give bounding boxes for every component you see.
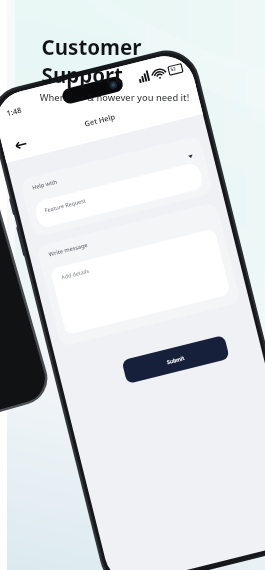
button[interactable]: Back xyxy=(30,189,48,203)
button[interactable] xyxy=(128,355,228,381)
button[interactable] xyxy=(44,222,209,256)
button[interactable] xyxy=(56,268,236,326)
